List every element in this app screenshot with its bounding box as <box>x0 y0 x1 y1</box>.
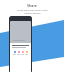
staticText: Share <box>27 3 37 8</box>
staticText: Share apps and content with nearby devic… <box>17 9 48 15</box>
